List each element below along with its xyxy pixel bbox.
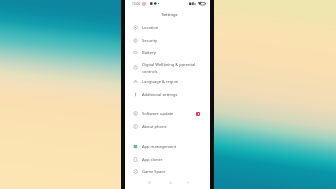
button[interactable]: App cloner [125, 153, 210, 166]
button[interactable]: App management [125, 140, 210, 153]
staticText: Language & region [142, 79, 179, 85]
staticText: Settings [161, 12, 178, 18]
staticText: Security [142, 38, 158, 44]
staticText: App cloner [142, 157, 163, 163]
button[interactable]: Game Space [125, 165, 210, 178]
staticText: Location [142, 25, 159, 31]
staticText: Battery [142, 50, 156, 56]
button[interactable]: Battery [125, 46, 210, 59]
staticText: 10:06 [132, 2, 141, 6]
button[interactable]: Security [125, 34, 210, 47]
button[interactable]: Recents [145, 178, 153, 186]
button[interactable]: Software update [125, 107, 210, 120]
staticText: Additional settings [142, 92, 178, 98]
staticText: Digital Wellbeing & parental controls [142, 62, 196, 74]
staticText: About phone [142, 124, 167, 130]
staticText: Software update [142, 111, 174, 117]
staticText: Game Space [142, 169, 166, 175]
button[interactable]: Location [125, 21, 210, 34]
button[interactable]: Back [183, 178, 191, 186]
staticText: App management [142, 144, 177, 150]
button[interactable]: Language & region [125, 75, 210, 88]
button[interactable]: Additional settings [125, 88, 210, 101]
button[interactable]: Home [166, 178, 174, 186]
button[interactable]: About phone [125, 120, 210, 133]
button[interactable]: Digital Wellbeing & parental controls [125, 60, 210, 75]
